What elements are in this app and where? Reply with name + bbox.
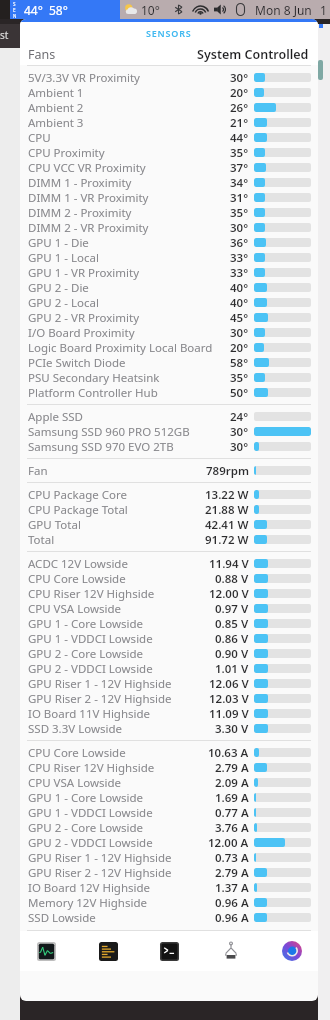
button[interactable]: SENSORS	[20, 22, 318, 43]
button[interactable]: SSD Lowside	[20, 910, 318, 925]
staticText: 0.90 V	[215, 646, 249, 661]
button[interactable]: CPU VCC VR Proximity	[20, 160, 318, 175]
staticText: GPU 2 - Core Lowside	[28, 646, 144, 661]
button[interactable]: CPU VSA Lowside	[20, 601, 318, 616]
button[interactable]: CPU Core Lowside	[20, 745, 318, 760]
button[interactable]: GPU Riser 1 - 12V Highside	[20, 850, 318, 865]
button[interactable]: Activity Monitor	[34, 939, 58, 963]
button[interactable]: GPU 2 - Die	[20, 280, 318, 295]
button[interactable]: Fans	[20, 43, 318, 65]
button[interactable]: 5V/3.3V VR Proximity	[20, 70, 318, 85]
button[interactable]: GPU 2 - VDDCI Lowside	[20, 835, 318, 850]
button[interactable]: I/O Board Proximity	[20, 325, 318, 340]
staticText: 91.72 W	[205, 532, 249, 547]
staticText: GPU 2 - VR Proximity	[28, 310, 140, 325]
button[interactable]: CPU VSA Lowside	[20, 775, 318, 790]
staticText: 35°	[230, 370, 249, 385]
staticText: 11.94 V	[209, 556, 249, 571]
button[interactable]: GPU 2 - VR Proximity	[20, 310, 318, 325]
button[interactable]: GPU 1 - Core Lowside	[20, 790, 318, 805]
button[interactable]: GPU 2 - Local	[20, 295, 318, 310]
button[interactable]: GPU 2 - Core Lowside	[20, 820, 318, 835]
button[interactable]: Ambient 3	[20, 115, 318, 130]
button[interactable]: PCIe Switch Diode	[20, 355, 318, 370]
staticText: 0.86 V	[215, 631, 249, 646]
staticText: Ambient 1	[28, 85, 84, 100]
staticText: 11.09 V	[209, 706, 249, 721]
staticText: Fans	[28, 46, 56, 63]
button[interactable]: GPU Riser 2 - 12V Highside	[20, 691, 318, 706]
button[interactable]: Ambient 1	[20, 85, 318, 100]
button[interactable]: GPU Total	[20, 517, 318, 532]
button[interactable]: Samsung SSD 970 EVO 2TB	[20, 439, 318, 454]
staticText: GPU 1 - Local	[28, 250, 99, 265]
staticText: 50°	[230, 385, 249, 400]
staticText: 33°	[230, 250, 249, 265]
staticText: 31°	[230, 190, 249, 205]
staticText: IO Board 12V Highside	[28, 880, 151, 895]
staticText: SENSORS	[146, 27, 192, 39]
button[interactable]: Platform Controller Hub	[20, 385, 318, 400]
button[interactable]: IO Board 11V Highside	[20, 706, 318, 721]
staticText: GPU Riser 1 - 12V Highside	[28, 676, 172, 691]
button[interactable]: CPU Package Total	[20, 502, 318, 517]
staticText: 37°	[230, 160, 249, 175]
button[interactable]: DIMM 2 - VR Proximity	[20, 220, 318, 235]
staticText: 24°	[230, 409, 249, 424]
staticText: GPU 2 - VDDCI Lowside	[28, 835, 153, 850]
staticText: 0.73 A	[215, 850, 249, 865]
button[interactable]: Total	[20, 532, 318, 547]
button[interactable]: CPU Core Lowside	[20, 571, 318, 586]
button[interactable]: GPU 2 - Core Lowside	[20, 646, 318, 661]
staticText: GPU Total	[28, 517, 81, 532]
staticText: 58°	[230, 355, 249, 370]
button[interactable]: GPU 1 - VDDCI Lowside	[20, 631, 318, 646]
button[interactable]: GPU Riser 2 - 12V Highside	[20, 865, 318, 880]
button[interactable]: ACDC 12V Lowside	[20, 556, 318, 571]
button[interactable]: GPU 1 - VDDCI Lowside	[20, 805, 318, 820]
button[interactable]: GPU 1 - Local	[20, 250, 318, 265]
button[interactable]: CPU Proximity	[20, 145, 318, 160]
button[interactable]: Ambient 2	[20, 100, 318, 115]
button[interactable]: IO Board 12V Highside	[20, 880, 318, 895]
staticText: 33°	[230, 265, 249, 280]
button[interactable]: CPU	[20, 130, 318, 145]
staticText: Samsung SSD 970 EVO 2TB	[28, 439, 174, 454]
button[interactable]: DIMM 1 - VR Proximity	[20, 190, 318, 205]
button[interactable]: GPU 1 - Die	[20, 235, 318, 250]
button[interactable]: GPU 2 - VDDCI Lowside	[20, 661, 318, 676]
button[interactable]: PSU Secondary Heatsink	[20, 370, 318, 385]
staticText: Logic Board Proximity Local Board	[28, 340, 213, 355]
button[interactable]: Apple SSD	[20, 409, 318, 424]
button[interactable]: DIMM 2 - Proximity	[20, 205, 318, 220]
button[interactable]: Terminal	[157, 939, 181, 963]
button[interactable]: Browser	[280, 939, 304, 963]
button[interactable]: DIMM 1 - Proximity	[20, 175, 318, 190]
button[interactable]: Preview	[219, 939, 243, 963]
staticText: 1.69 A	[215, 790, 249, 805]
button[interactable]: SSD 3.3V Lowside	[20, 721, 318, 736]
staticText: 40°	[230, 295, 249, 310]
staticText: 45°	[230, 310, 249, 325]
staticText: CPU Package Core	[28, 487, 127, 502]
staticText: 0.88 V	[215, 571, 249, 586]
staticText: 12.03 V	[209, 691, 249, 706]
button[interactable]: GPU Riser 1 - 12V Highside	[20, 676, 318, 691]
button[interactable]: CPU Package Core	[20, 487, 318, 502]
button[interactable]: CPU Riser 12V Highside	[20, 586, 318, 601]
staticText: Total	[28, 532, 55, 547]
staticText: Platform Controller Hub	[28, 385, 158, 400]
button[interactable]: GPU 1 - Core Lowside	[20, 616, 318, 631]
staticText: Fan	[28, 463, 48, 478]
staticText: GPU Riser 2 - 12V Highside	[28, 691, 172, 706]
staticText: 12.06 V	[209, 676, 249, 691]
staticText: 42.41 W	[205, 517, 249, 532]
button[interactable]: Logic Board Proximity Local Board	[20, 340, 318, 355]
button[interactable]: Memory 12V Highside	[20, 895, 318, 910]
button[interactable]: Fan	[20, 463, 318, 478]
other: Volume	[214, 4, 228, 15]
button[interactable]: GPU 1 - VR Proximity	[20, 265, 318, 280]
button[interactable]: CPU Riser 12V Highside	[20, 760, 318, 775]
button[interactable]: Samsung SSD 960 PRO 512GB	[20, 424, 318, 439]
button[interactable]: Console	[96, 939, 120, 963]
